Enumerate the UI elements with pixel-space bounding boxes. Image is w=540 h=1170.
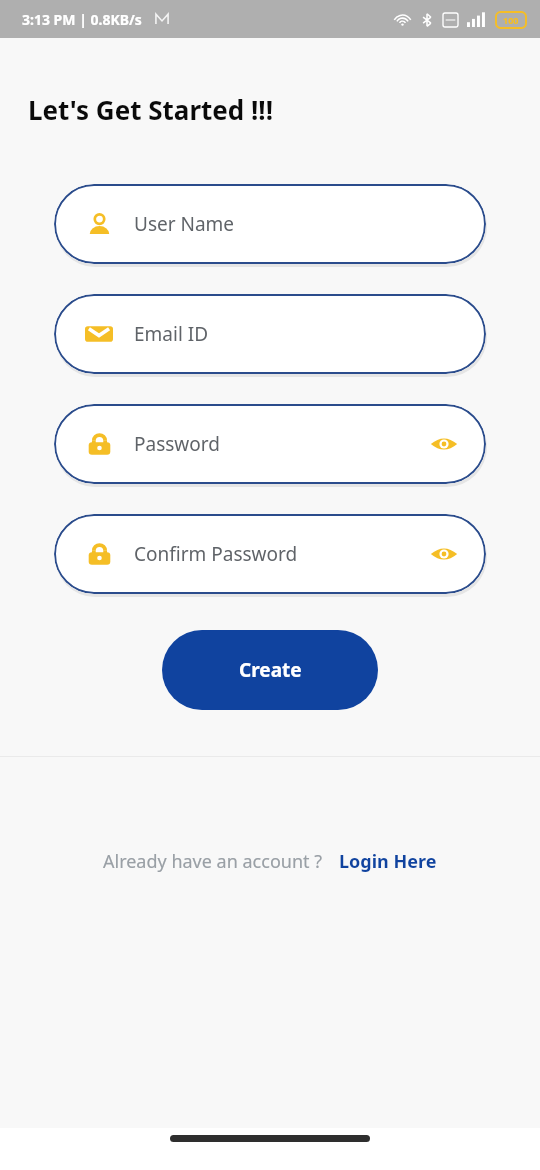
staticText: Email ID: [134, 321, 209, 347]
staticText: 3:13 PM | 0.8KB/s: [22, 10, 142, 29]
staticText: Password: [134, 431, 220, 457]
button[interactable]: Show password: [428, 538, 460, 570]
button[interactable]: Password: [54, 404, 486, 484]
staticText: Let's Get Started !!!: [28, 92, 273, 127]
button[interactable]: Login Here: [339, 849, 437, 874]
button[interactable]: Create: [162, 630, 378, 710]
button[interactable]: Show password: [428, 428, 460, 460]
button[interactable]: User Name: [54, 184, 486, 264]
staticText: Confirm Password: [134, 541, 298, 567]
button[interactable]: Email ID: [54, 294, 486, 374]
staticText: Already have an account ?: [103, 849, 323, 874]
staticText: Login Here: [339, 849, 437, 874]
staticText: User Name: [134, 211, 235, 237]
staticText: Create: [239, 657, 302, 683]
staticText: 100: [503, 14, 519, 26]
button[interactable]: Confirm Password: [54, 514, 486, 594]
